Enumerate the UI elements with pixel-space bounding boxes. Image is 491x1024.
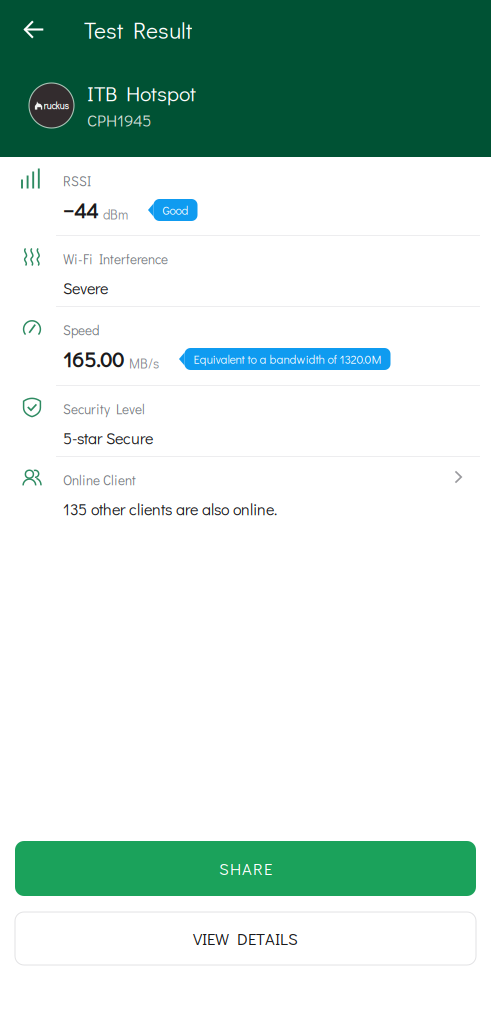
staticText: I — [202, 928, 207, 949]
staticText: V — [193, 928, 202, 949]
staticText: Online Client — [63, 471, 136, 489]
staticText: E — [207, 928, 215, 949]
staticText: T — [256, 928, 265, 949]
staticText: R — [253, 858, 263, 879]
staticText: ITB Hotspot — [87, 79, 196, 107]
staticText: dBm — [103, 205, 128, 223]
staticText: 135 other clients are also online. — [63, 498, 277, 519]
button[interactable]: V — [15, 912, 476, 965]
button[interactable]: Back — [11, 7, 56, 52]
staticText: Security Level — [63, 400, 145, 418]
staticText: Equivalent to a bandwidth of 1320.0M — [193, 351, 381, 367]
staticText: CPH1945 — [87, 109, 151, 131]
button[interactable]: S — [15, 841, 476, 896]
staticText: A — [242, 858, 252, 879]
staticText: Wi-Fi Interference — [63, 250, 168, 268]
staticText: S — [288, 928, 298, 949]
staticText: 165.00 — [63, 345, 124, 373]
staticText: S — [219, 858, 229, 879]
staticText: W — [215, 928, 229, 949]
staticText: −44 — [63, 196, 98, 224]
staticText: Test Result — [84, 15, 192, 45]
staticText: RSSI — [63, 172, 91, 190]
staticText: Speed — [63, 321, 99, 339]
staticText: E — [264, 858, 272, 879]
staticText: A — [265, 928, 275, 949]
staticText: Severe — [63, 277, 108, 298]
staticText: 5-star Secure — [63, 427, 153, 448]
staticText: L — [280, 928, 288, 949]
staticText: D — [237, 928, 248, 949]
staticText: I — [275, 928, 280, 949]
staticText: ruckus — [43, 99, 68, 112]
staticText: MB/s — [129, 354, 159, 372]
staticText: E — [248, 928, 256, 949]
staticText: Good — [162, 202, 188, 218]
staticText: H — [230, 858, 241, 879]
